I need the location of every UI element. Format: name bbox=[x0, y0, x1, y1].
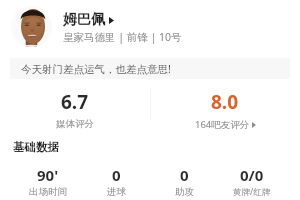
button[interactable]: 6.7 bbox=[0, 89, 150, 130]
staticText: 皇家马德里 | 前锋 | 10号 bbox=[63, 30, 182, 44]
button[interactable]: 8.0 bbox=[150, 89, 300, 131]
staticText: 6.7 bbox=[61, 89, 89, 115]
staticText: 0 bbox=[112, 165, 121, 185]
staticText: 进球 bbox=[107, 186, 126, 198]
button[interactable]: Player avatar bbox=[11, 6, 52, 47]
staticText: 出场时间 bbox=[29, 186, 67, 198]
staticText: 黄牌/红牌 bbox=[233, 186, 271, 198]
button[interactable]: 今天射门差点运气，也差点意思! bbox=[10, 58, 290, 79]
staticText: 姆巴佩 bbox=[63, 11, 105, 29]
staticText: 0 bbox=[180, 165, 189, 185]
staticText: 0/0 bbox=[240, 165, 264, 185]
button[interactable]: 0/0 bbox=[218, 165, 286, 198]
button[interactable]: 90' bbox=[14, 165, 82, 198]
button[interactable]: 0 bbox=[150, 165, 218, 198]
button[interactable]: 姆巴佩 bbox=[63, 11, 114, 29]
staticText: 助攻 bbox=[175, 186, 194, 198]
button[interactable]: 基础数据 bbox=[13, 140, 59, 154]
staticText: 90' bbox=[37, 165, 59, 185]
staticText: 164吧友评分 bbox=[195, 118, 250, 131]
staticText: 8.0 bbox=[211, 89, 239, 115]
staticText: 今天射门差点运气，也差点意思! bbox=[21, 62, 171, 76]
staticText: 媒体评分 bbox=[56, 118, 94, 130]
button[interactable]: 0 bbox=[82, 165, 150, 198]
